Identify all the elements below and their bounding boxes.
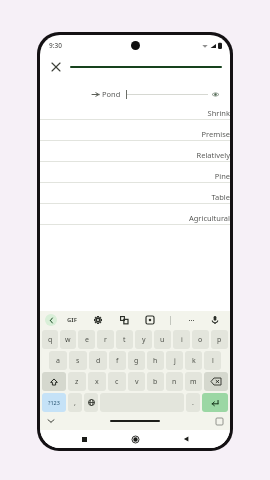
button[interactable]: Shrink: [40, 103, 230, 124]
staticText: k: [192, 356, 196, 366]
staticText: Pond: [102, 89, 121, 99]
button[interactable]: GIF: [67, 316, 77, 324]
button[interactable]: x: [88, 372, 106, 391]
button[interactable]: Backspace: [204, 372, 228, 391]
staticText: g: [134, 356, 139, 366]
staticText: m: [190, 377, 197, 387]
button[interactable]: a: [49, 351, 67, 370]
button[interactable]: Table: [40, 187, 230, 208]
button[interactable]: c: [108, 372, 126, 391]
staticText: d: [96, 356, 101, 366]
staticText: n: [172, 377, 177, 387]
button[interactable]: Stickers: [144, 314, 156, 326]
staticText: x: [95, 377, 99, 387]
staticText: b: [153, 377, 158, 387]
button[interactable]: Translate: [118, 314, 130, 326]
staticText: Pine: [214, 171, 230, 181]
staticText: t: [123, 335, 126, 345]
button[interactable]: n: [166, 372, 183, 391]
staticText: Shrink: [207, 108, 230, 118]
button[interactable]: ,: [68, 393, 82, 412]
button[interactable]: w: [60, 330, 76, 349]
staticText: Relatively: [196, 150, 230, 160]
button[interactable]: l: [204, 351, 221, 370]
button[interactable]: Recents: [77, 432, 91, 446]
button[interactable]: h: [147, 351, 164, 370]
button[interactable]: Home: [128, 432, 142, 446]
staticText: c: [115, 377, 119, 387]
button[interactable]: More options: [185, 314, 197, 326]
staticText: r: [104, 335, 107, 345]
staticText: ,: [74, 398, 76, 408]
button[interactable]: i: [173, 330, 190, 349]
button[interactable]: m: [185, 372, 202, 391]
staticText: f: [116, 356, 119, 366]
button[interactable]: Pond: [92, 85, 220, 103]
button[interactable]: Settings: [92, 314, 104, 326]
button[interactable]: Pine: [40, 166, 230, 187]
button[interactable]: Relatively: [40, 145, 230, 166]
staticText: ?123: [48, 399, 60, 406]
button[interactable]: y: [135, 330, 152, 349]
button[interactable]: Agricultural: [40, 208, 230, 229]
staticText: o: [198, 335, 203, 345]
staticText: y: [142, 335, 146, 345]
button[interactable]: f: [109, 351, 126, 370]
button[interactable]: z: [68, 372, 86, 391]
staticText: e: [85, 335, 89, 345]
staticText: Premise: [201, 129, 230, 139]
button[interactable]: Show password: [211, 90, 220, 99]
staticText: .: [192, 398, 194, 408]
staticText: v: [135, 377, 139, 387]
staticText: GIF: [67, 316, 77, 324]
button[interactable]: .: [186, 393, 200, 412]
button[interactable]: Hide keyboard: [46, 416, 56, 426]
staticText: s: [76, 356, 80, 366]
staticText: i: [181, 335, 183, 345]
button[interactable]: k: [185, 351, 202, 370]
staticText: 9:30: [49, 41, 62, 50]
button[interactable]: Shift: [42, 372, 66, 391]
button[interactable]: Change language: [84, 393, 98, 412]
staticText: u: [160, 335, 165, 345]
button[interactable]: Keyboard layout: [214, 416, 224, 426]
staticText: a: [56, 356, 60, 366]
staticText: z: [75, 377, 79, 387]
button[interactable]: j: [166, 351, 183, 370]
button[interactable]: r: [97, 330, 114, 349]
staticText: l: [212, 356, 214, 366]
staticText: j: [174, 356, 176, 366]
staticText: w: [65, 335, 71, 345]
staticText: p: [217, 335, 222, 345]
button[interactable]: Premise: [40, 124, 230, 145]
button[interactable]: p: [211, 330, 228, 349]
button[interactable]: u: [154, 330, 171, 349]
button[interactable]: v: [128, 372, 145, 391]
button[interactable]: Voice input: [209, 314, 221, 326]
staticText: h: [153, 356, 158, 366]
button[interactable]: t: [116, 330, 133, 349]
staticText: Table: [211, 192, 230, 202]
button[interactable]: Close: [48, 59, 64, 75]
button[interactable]: b: [147, 372, 164, 391]
button[interactable]: Enter: [202, 393, 228, 412]
button[interactable]: s: [69, 351, 87, 370]
button[interactable]: q: [42, 330, 58, 349]
button[interactable]: e: [78, 330, 95, 349]
staticText: Agricultural: [188, 213, 230, 223]
button[interactable]: ?123: [42, 393, 66, 412]
button[interactable]: Expand toolbar: [45, 314, 57, 326]
button[interactable]: g: [128, 351, 145, 370]
button[interactable]: Back: [179, 432, 193, 446]
staticText: q: [48, 335, 53, 345]
button[interactable]: d: [89, 351, 107, 370]
button[interactable]: o: [192, 330, 209, 349]
